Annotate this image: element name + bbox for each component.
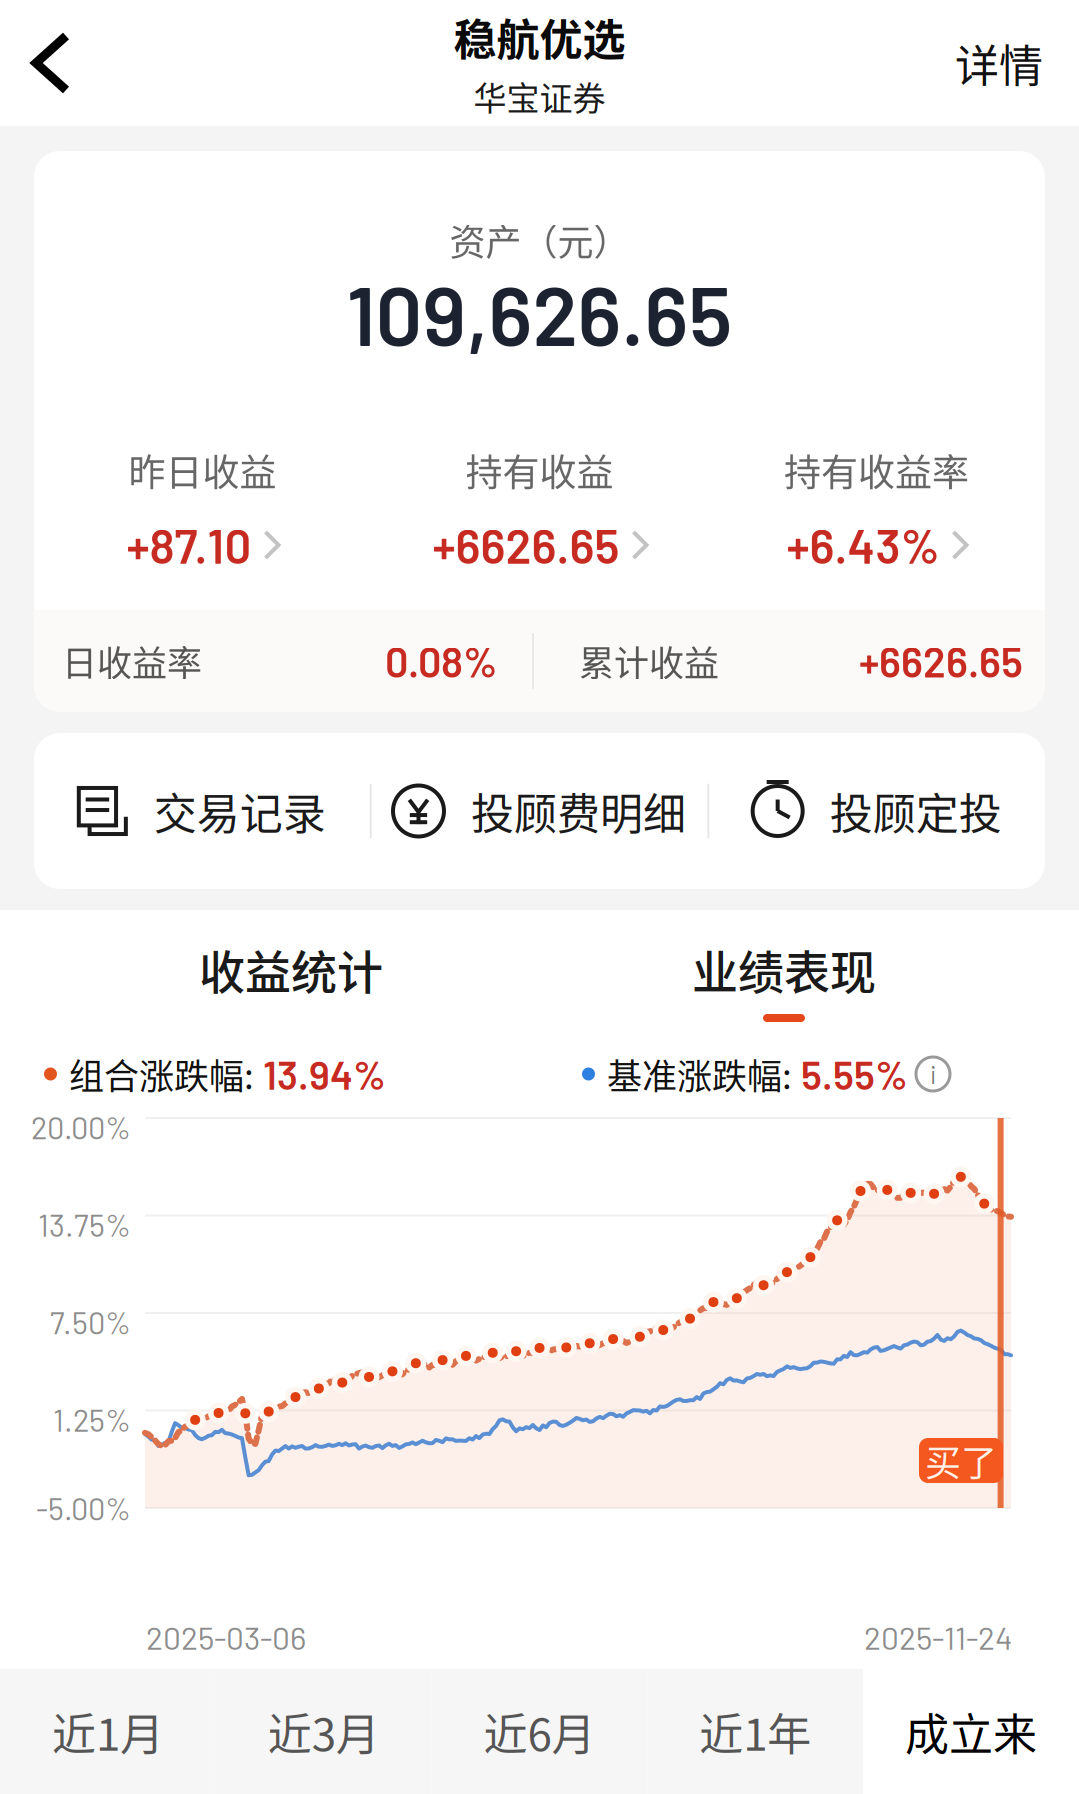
staticText: 基准涨跌幅:	[607, 1049, 792, 1099]
staticText: 20.00%	[31, 1109, 131, 1145]
staticText: 持有收益率	[784, 443, 969, 497]
button[interactable]: 交易记录	[34, 733, 370, 889]
staticText: 1.25%	[53, 1401, 131, 1438]
staticText: 组合涨跌幅:	[69, 1049, 254, 1099]
staticText: 收益统计	[199, 936, 383, 1002]
staticText: +6626.65	[432, 517, 619, 573]
staticText: 近1月	[52, 1700, 164, 1763]
button[interactable]: 收益统计	[0, 941, 582, 1022]
staticText: 5.55%	[801, 1050, 908, 1098]
staticText: +6.43%	[786, 517, 939, 573]
staticText: i	[930, 1059, 936, 1089]
staticText: 资产（元）	[449, 214, 629, 266]
staticText: 详情	[955, 31, 1043, 95]
staticText: 业绩表现	[692, 936, 876, 1002]
staticText: 买了	[925, 1434, 997, 1486]
staticText: 昨日收益	[128, 443, 276, 497]
staticText: +6626.65	[859, 636, 1023, 686]
staticText: 近3月	[268, 1700, 380, 1763]
staticText: 华宝证券	[473, 72, 605, 120]
staticText: 近1年	[699, 1700, 811, 1763]
staticText: 交易记录	[154, 780, 326, 842]
staticText: -5.00%	[36, 1490, 131, 1526]
staticText: 投顾费明细	[471, 780, 686, 842]
staticText: 稳航优选	[453, 6, 625, 68]
staticText: 13.94%	[263, 1050, 386, 1098]
button[interactable]: 持有收益率	[708, 444, 1045, 572]
staticText: 投顾定投	[830, 780, 1002, 842]
button[interactable]: 投顾费明细	[372, 733, 707, 889]
button[interactable]: 成立来	[863, 1669, 1079, 1794]
staticText: 近6月	[483, 1700, 595, 1763]
staticText: 持有收益	[465, 443, 613, 497]
staticText: +87.10	[126, 517, 251, 573]
button[interactable]: 业绩表现	[582, 941, 986, 1022]
button[interactable]: 近1月	[0, 1669, 216, 1794]
staticText: 2025-03-06	[146, 1618, 306, 1656]
staticText: 13.75%	[38, 1206, 131, 1243]
button[interactable]: 投顾定投	[709, 733, 1045, 889]
staticText: 日收益率	[62, 636, 202, 686]
staticText: 0.08%	[385, 636, 497, 686]
button[interactable]: 近1年	[647, 1669, 863, 1794]
staticText: 成立来	[905, 1700, 1037, 1763]
staticText: 累计收益	[579, 636, 719, 686]
staticText: 109,626.65	[346, 263, 732, 363]
button[interactable]: 昨日收益	[34, 444, 371, 572]
staticText: 7.50%	[50, 1304, 131, 1340]
button[interactable]: 返回	[0, 6, 98, 120]
button[interactable]: 详情	[955, 1, 1079, 125]
button[interactable]: 近3月	[216, 1669, 432, 1794]
button[interactable]: 近6月	[432, 1669, 647, 1794]
button[interactable]: 持有收益	[371, 444, 708, 572]
staticText: 2025-11-24	[864, 1618, 1012, 1656]
